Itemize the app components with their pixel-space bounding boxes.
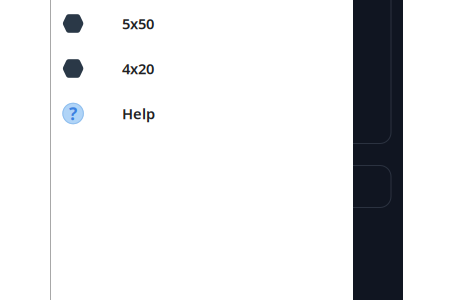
button[interactable]: ?: [0, 91, 450, 136]
staticText: ?: [69, 102, 77, 125]
staticText: Help: [122, 104, 155, 123]
staticText: 4x20: [122, 59, 154, 78]
button[interactable]: 5x50: [0, 1, 450, 46]
button[interactable]: 4x20: [0, 46, 450, 91]
staticText: 5x50: [122, 14, 154, 33]
